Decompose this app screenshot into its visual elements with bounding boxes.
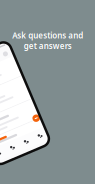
staticText: Ask questions and get answers bbox=[12, 30, 83, 51]
